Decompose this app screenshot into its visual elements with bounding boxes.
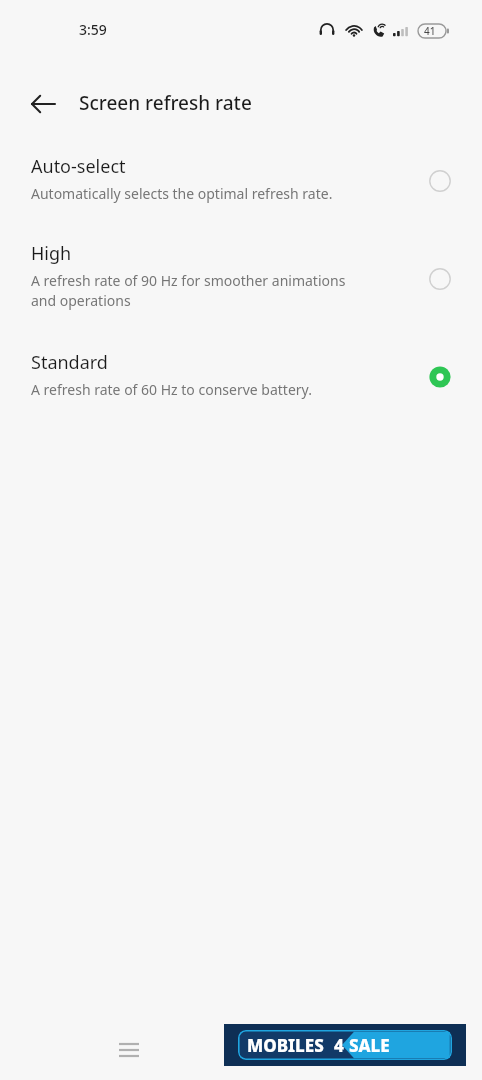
button[interactable]: Auto-select	[0, 150, 482, 220]
staticText: Automatically selects the optimal refres…	[31, 184, 333, 203]
button[interactable]: Recent apps	[105, 1028, 153, 1072]
button[interactable]: Select High	[421, 260, 459, 298]
staticText: A refresh rate of 60 Hz to conserve batt…	[31, 380, 312, 399]
button[interactable]: High	[0, 237, 482, 329]
button[interactable]: Standard selected	[421, 358, 459, 396]
button[interactable]: Select Auto-select	[421, 162, 459, 200]
staticText: MOBILES	[247, 1034, 324, 1057]
staticText: Standard	[31, 350, 108, 375]
staticText: 4	[334, 1034, 344, 1057]
staticText: 41	[424, 24, 436, 38]
staticText: A refresh rate of 90 Hz for smoother ani…	[31, 271, 346, 310]
button[interactable]: Standard	[0, 346, 482, 416]
button[interactable]: Back	[22, 82, 66, 126]
staticText: High	[31, 241, 72, 266]
staticText: SALE	[349, 1034, 390, 1057]
staticText: 3:59	[79, 20, 107, 39]
staticText: Screen refresh rate	[79, 90, 252, 116]
staticText: Auto-select	[31, 154, 126, 179]
